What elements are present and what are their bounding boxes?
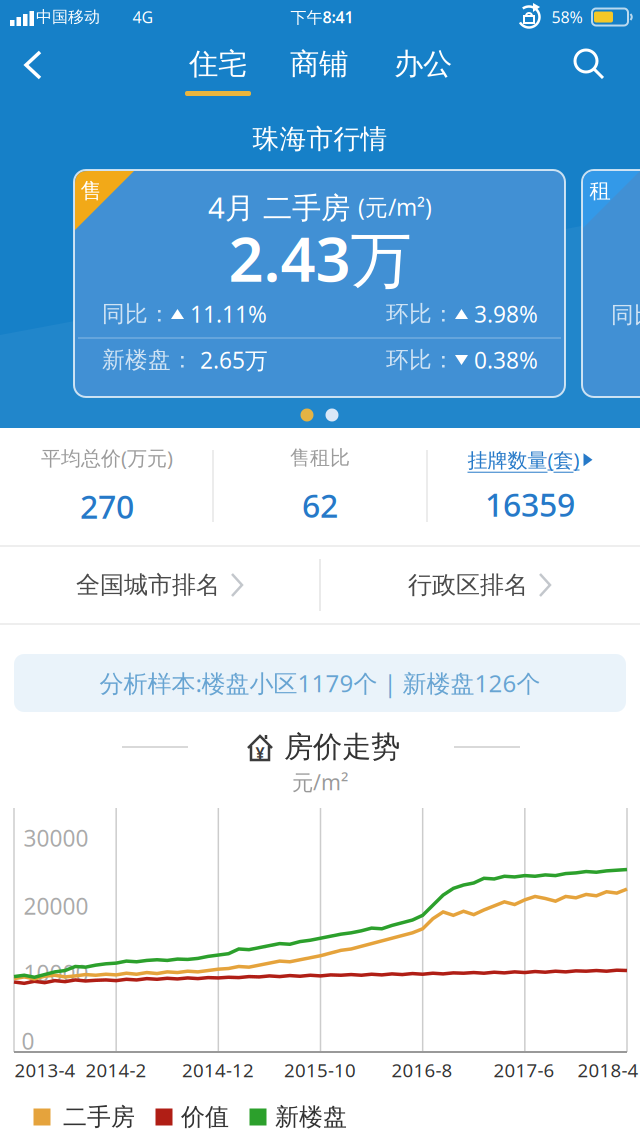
- staticText: 房价走势: [284, 729, 400, 765]
- button[interactable]: 返回: [24, 50, 44, 82]
- staticText: 环比：: [386, 346, 455, 374]
- staticText: 同比: [611, 301, 640, 329]
- staticText: 20000: [23, 891, 88, 921]
- staticText: 办公: [394, 46, 452, 82]
- staticText: 62: [302, 484, 338, 526]
- staticText: 行政区排名: [408, 570, 528, 600]
- button[interactable]: 住宅: [185, 46, 251, 96]
- staticText: 0.38%: [468, 345, 538, 375]
- staticText: 2018-4: [577, 1058, 638, 1082]
- staticText: 价值: [181, 1102, 229, 1132]
- staticText: 售租比: [290, 445, 350, 470]
- staticText: 16359: [485, 483, 575, 525]
- staticText: 11.11%: [184, 299, 267, 329]
- staticText: 2.65万: [194, 345, 268, 375]
- staticText: 2.43万: [228, 217, 411, 299]
- staticText: 30000: [23, 823, 88, 853]
- staticText: 分析样本:楼盘小区1179个 | 新楼盘126个: [99, 667, 540, 699]
- button[interactable]: 全国城市排名: [76, 570, 244, 600]
- staticText: 0: [21, 1026, 34, 1056]
- staticText: 4G: [132, 6, 153, 28]
- staticText: 二手房: [63, 1102, 135, 1132]
- staticText: 环比：: [386, 300, 455, 328]
- staticText: 平均总价(万元): [41, 444, 173, 471]
- staticText: 挂牌数量(套): [467, 446, 579, 473]
- staticText: (元/m²): [358, 192, 432, 222]
- button[interactable]: 挂牌数量(套): [467, 446, 592, 526]
- button[interactable]: 商铺: [290, 46, 348, 82]
- button[interactable]: 搜索: [573, 48, 605, 80]
- staticText: 2014-12: [182, 1058, 254, 1082]
- staticText: 新楼盘: [275, 1102, 347, 1132]
- button[interactable]: 平均总价(万元): [41, 444, 173, 528]
- staticText: ¥: [255, 742, 264, 764]
- staticText: 售: [80, 178, 101, 204]
- staticText: 同比：: [102, 300, 171, 328]
- staticText: 4月 二手房: [208, 187, 350, 226]
- staticText: 2013-4: [14, 1058, 75, 1082]
- staticText: 全国城市排名: [76, 570, 220, 600]
- staticText: 2016-8: [391, 1058, 452, 1082]
- staticText: 2014-2: [85, 1058, 146, 1082]
- staticText: 住宅: [189, 46, 247, 82]
- staticText: 58%: [551, 6, 582, 28]
- staticText: 中国移动: [36, 7, 100, 27]
- staticText: 元/m²: [292, 768, 348, 796]
- button[interactable]: 行政区排名: [408, 570, 552, 600]
- staticText: 2017-6: [493, 1058, 554, 1082]
- button[interactable]: 分析样本:楼盘小区1179个 | 新楼盘126个: [14, 654, 626, 712]
- staticText: 租: [589, 178, 610, 204]
- staticText: 新楼盘：: [102, 346, 194, 374]
- staticText: 270: [80, 485, 134, 527]
- staticText: 商铺: [290, 46, 348, 82]
- staticText: 2015-10: [284, 1058, 356, 1082]
- staticText: 10000: [23, 958, 88, 988]
- staticText: 珠海市行情: [252, 123, 387, 155]
- staticText: 3.98%: [468, 299, 538, 329]
- button[interactable]: 办公: [394, 46, 452, 82]
- staticText: 下午8:41: [290, 6, 353, 28]
- button[interactable]: 售租比: [290, 445, 350, 527]
